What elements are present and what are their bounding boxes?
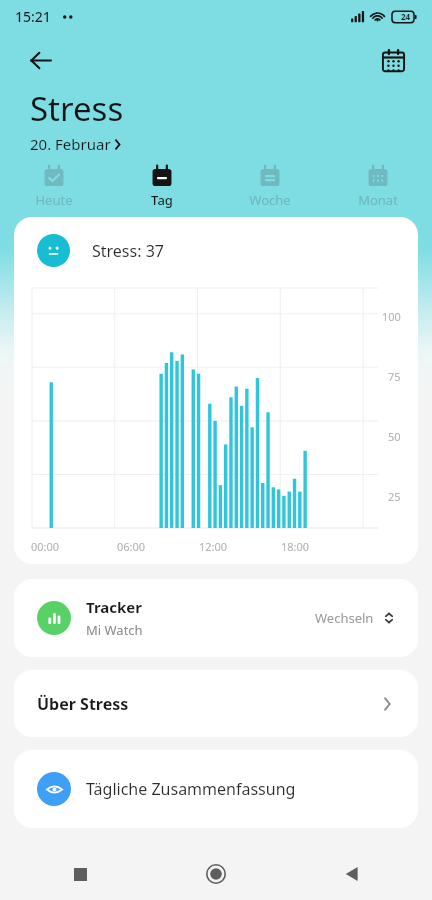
staticText: 25	[388, 489, 401, 504]
staticText: 18:00	[281, 539, 310, 554]
staticText: Wechseln	[315, 609, 374, 627]
staticText: 75	[388, 369, 401, 384]
staticText: Woche	[249, 191, 291, 209]
button[interactable]: Woche	[216, 165, 324, 209]
button[interactable]: Tracker	[14, 579, 418, 657]
staticText: 24	[401, 11, 411, 22]
button[interactable]: Letzte Apps	[58, 852, 102, 896]
staticText: Stress	[30, 86, 124, 131]
staticText: 06:00	[117, 539, 146, 554]
staticText: Tracker	[86, 597, 142, 617]
staticText: Monat	[358, 191, 398, 209]
button[interactable]: Heute	[0, 165, 108, 209]
staticText: 12:00	[199, 539, 228, 554]
button[interactable]: Tag	[108, 165, 216, 209]
button[interactable]: Kalender	[371, 38, 415, 82]
staticText: 15:21	[15, 7, 51, 26]
staticText: 100	[382, 309, 401, 324]
staticText: Heute	[35, 191, 73, 209]
staticText: 00:00	[31, 539, 60, 554]
staticText: Tägliche Zusammenfassung	[86, 778, 402, 800]
staticText: Tag	[151, 191, 173, 209]
button[interactable]: Startseite	[194, 852, 238, 896]
button[interactable]: Tägliche Zusammenfassung	[14, 750, 418, 828]
button[interactable]: Über Stress	[14, 670, 418, 737]
staticText: Mi Watch	[86, 621, 143, 639]
staticText: 50	[388, 429, 401, 444]
button[interactable]: Stress: 37	[14, 217, 418, 284]
button[interactable]: Zurück	[330, 852, 374, 896]
button[interactable]: Monat	[324, 165, 432, 209]
button[interactable]: Zurück	[19, 38, 63, 82]
staticText: Stress: 37	[92, 240, 164, 262]
button[interactable]: 20. Februar	[30, 134, 126, 154]
staticText: 20. Februar	[30, 134, 111, 154]
staticText: Über Stress	[37, 693, 377, 715]
